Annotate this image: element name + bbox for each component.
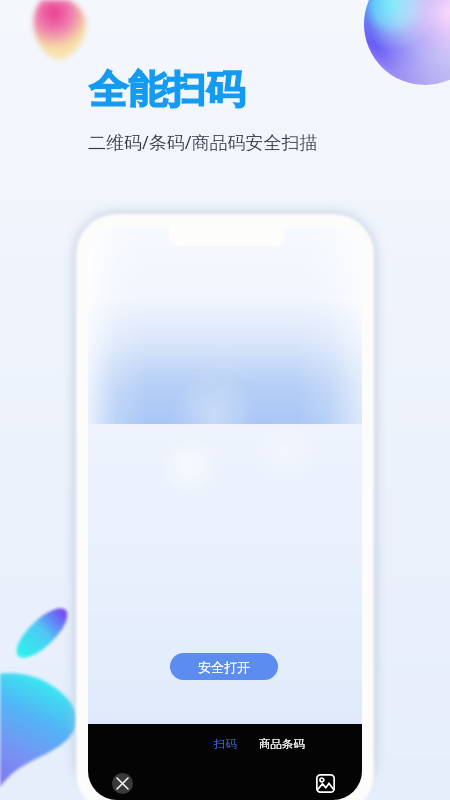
staticText: 二维码/条码/商品码安全扫描 bbox=[88, 130, 318, 155]
button[interactable]: 扫码 bbox=[214, 737, 237, 751]
button[interactable]: 安全打开 bbox=[170, 653, 278, 680]
button[interactable]: Gallery bbox=[315, 773, 336, 794]
staticText: 商品条码 bbox=[259, 737, 305, 751]
staticText: 全能扫码 bbox=[89, 65, 245, 114]
button[interactable]: 商品条码 bbox=[259, 737, 305, 751]
staticText: 安全打开 bbox=[198, 659, 250, 675]
staticText: 扫码 bbox=[214, 737, 237, 751]
button[interactable]: Close bbox=[112, 773, 133, 794]
